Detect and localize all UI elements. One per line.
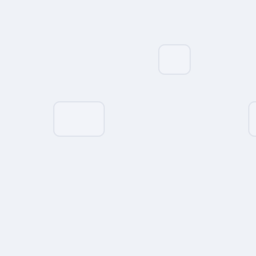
button[interactable]: Tile two [53,101,105,137]
button[interactable]: Tile one [158,44,191,75]
button[interactable]: Tile three [248,101,256,137]
